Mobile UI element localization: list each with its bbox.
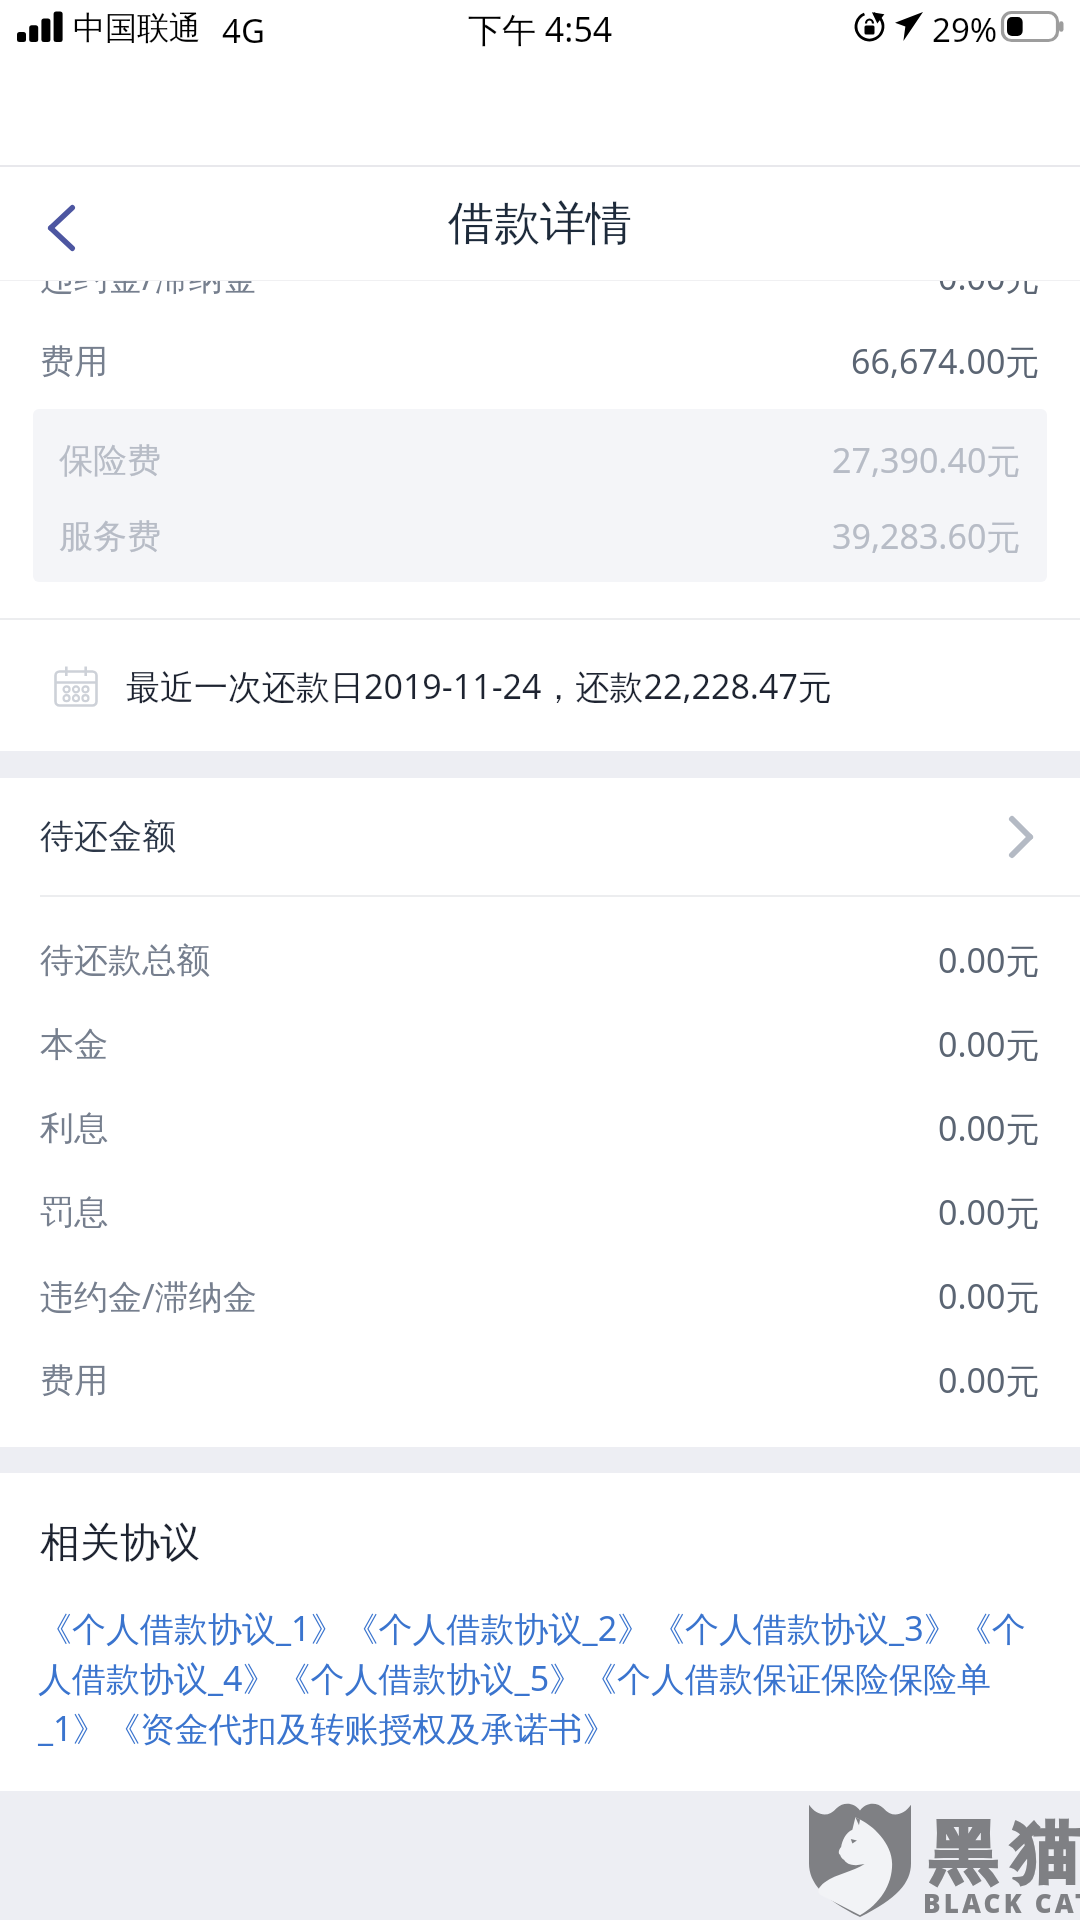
staticText: 罚息 [40, 1191, 108, 1234]
staticText: 费用 [40, 340, 108, 383]
button[interactable]: 违约金/滞纳金 [0, 235, 1080, 319]
staticText: 违约金/滞纳金 [40, 254, 257, 300]
button[interactable]: 《个人借款协议_1》《个人借款协议_2》《个人借款协议_3》《个 [38, 1605, 1060, 1751]
staticText: 0.00元 [938, 937, 1040, 983]
button[interactable]: 费用 [0, 319, 1080, 403]
button[interactable]: 罚息 [0, 1170, 1080, 1254]
staticText: 29% [932, 7, 998, 52]
staticText: 相关协议 [40, 1517, 200, 1567]
staticText: 保险费 [59, 439, 161, 482]
staticText: 待还款总额 [40, 939, 210, 982]
staticText: 66,674.00元 [851, 338, 1040, 384]
staticText: _1》《资金代扣及转账授权及承诺书》 [38, 1705, 617, 1751]
button[interactable]: 最近一次还款日2019-11-24，还款22,228.47元 [0, 620, 1080, 751]
button[interactable]: 待还款总额 [0, 918, 1080, 1002]
staticText: 人借款协议_4》《个人借款协议_5》《个人借款保证保险保险单 [38, 1655, 992, 1701]
staticText: 黑猫 [922, 1811, 1080, 1897]
staticText: 0.00元 [938, 1357, 1040, 1403]
staticText: 违约金/滞纳金 [40, 1273, 257, 1319]
button[interactable]: 待还金额 [0, 778, 1080, 895]
staticText: 0.00元 [938, 1189, 1040, 1235]
button[interactable]: 本金 [0, 1002, 1080, 1086]
staticText: 0.00元 [938, 254, 1040, 300]
staticText: 中国联通 [73, 8, 201, 48]
staticText: BLACK CAT [923, 1885, 1080, 1920]
staticText: 最近一次还款日2019-11-24，还款22,228.47元 [126, 663, 832, 709]
staticText: 利息 [40, 1107, 108, 1150]
staticText: 待还金额 [40, 815, 176, 858]
staticText: 39,283.60元 [832, 513, 1021, 559]
button[interactable]: 违约金/滞纳金 [0, 1254, 1080, 1338]
staticText: 27,390.40元 [832, 437, 1021, 483]
staticText: 下午 4:54 [468, 6, 613, 52]
other: 待还金额详情 [1009, 816, 1033, 858]
staticText: 0.00元 [938, 1105, 1040, 1151]
staticText: 《个人借款协议_1》《个人借款协议_2》《个人借款协议_3》《个 [38, 1605, 1026, 1651]
button[interactable]: Back [24, 191, 98, 265]
staticText: 本金 [40, 1023, 108, 1066]
staticText: 4G [222, 8, 265, 53]
staticText: 费用 [40, 1359, 108, 1402]
staticText: 借款详情 [448, 195, 632, 253]
button[interactable]: 利息 [0, 1086, 1080, 1170]
staticText: 0.00元 [938, 1021, 1040, 1067]
button[interactable]: 费用 [0, 1338, 1080, 1422]
staticText: 服务费 [59, 515, 161, 558]
staticText: 0.00元 [938, 1273, 1040, 1319]
